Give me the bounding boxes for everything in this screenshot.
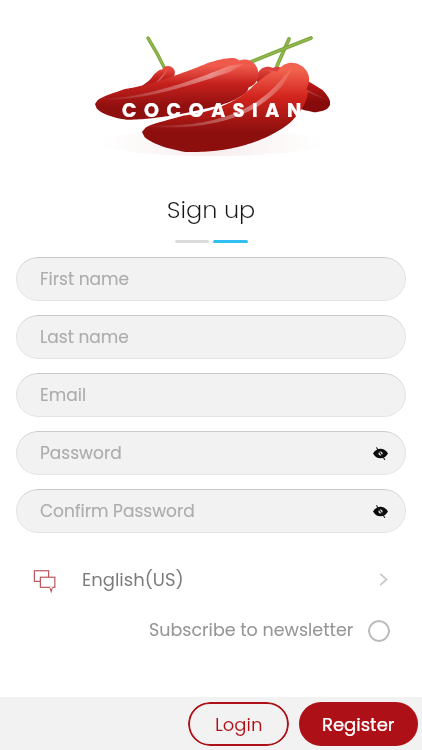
button[interactable]: Password xyxy=(16,431,406,475)
staticText: First name xyxy=(40,267,130,291)
button[interactable]: Confirm Password xyxy=(16,489,406,533)
button[interactable]: Register xyxy=(299,702,418,746)
button[interactable]: Login xyxy=(188,702,289,746)
staticText: Register xyxy=(322,712,395,737)
staticText: Login xyxy=(215,712,263,737)
staticText: COCOASIAN xyxy=(122,97,309,124)
button[interactable]: Show password xyxy=(368,441,392,465)
staticText: Password xyxy=(40,441,122,465)
button[interactable]: Subscribe to newsletter xyxy=(149,618,390,643)
staticText: Sign up xyxy=(0,193,422,227)
staticText: Last name xyxy=(40,325,129,349)
staticText: Email xyxy=(40,383,87,407)
button[interactable]: English(US) xyxy=(0,562,422,596)
staticText: English(US) xyxy=(82,567,184,592)
staticText: Confirm Password xyxy=(40,499,195,523)
staticText: Subscribe to newsletter xyxy=(149,618,354,643)
button[interactable]: Last name xyxy=(16,315,406,359)
button[interactable]: First name xyxy=(16,257,406,301)
button[interactable]: Show password xyxy=(368,499,392,523)
button[interactable]: Email xyxy=(16,373,406,417)
